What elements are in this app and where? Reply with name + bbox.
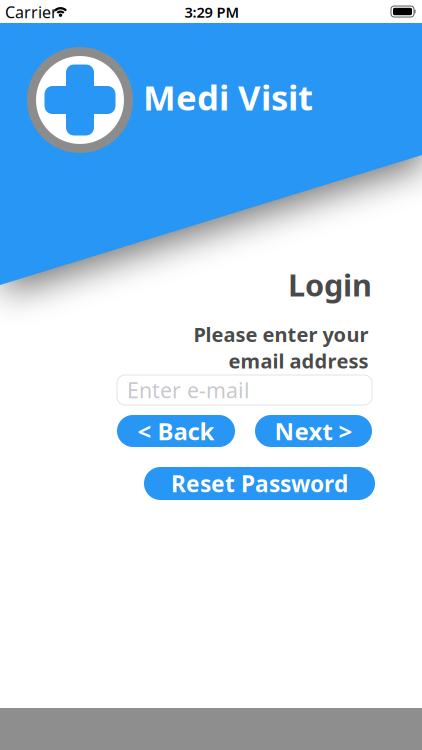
staticText: < Back [137,415,214,447]
staticText: 3:29 PM [184,2,239,22]
staticText: Carrier [5,1,58,23]
staticText: Reset Password [171,468,348,498]
button[interactable]: Reset Password [144,467,375,500]
staticText: Enter e-mail [127,376,250,404]
staticText: Login [288,264,372,305]
button[interactable]: Next > [255,415,372,447]
button[interactable]: < Back [117,415,235,447]
staticText: Next > [274,415,352,447]
staticText: Medi Visit [143,74,313,120]
staticText: Please enter your email address [193,321,368,374]
